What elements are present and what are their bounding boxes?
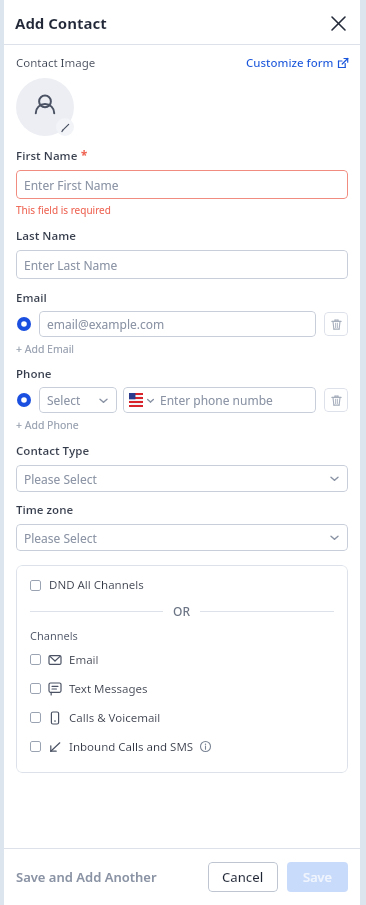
staticText: Add Contact — [15, 13, 107, 33]
staticText: DND All Channels — [49, 577, 144, 593]
button[interactable]: Toggle — [30, 683, 41, 694]
button[interactable]: Select primary — [16, 316, 32, 332]
button[interactable]: Toggle — [30, 654, 41, 665]
staticText: Save — [303, 868, 332, 886]
button[interactable]: Toggle — [30, 580, 41, 591]
staticText: Text Messages — [69, 681, 148, 697]
staticText: Time zone — [16, 502, 74, 518]
staticText: Enter phone numbe — [160, 392, 273, 408]
staticText: Please Select — [24, 471, 97, 487]
staticText: Email — [69, 652, 99, 668]
staticText: Calls & Voicemail — [69, 710, 161, 726]
button[interactable]: Save and Add Another — [16, 868, 157, 886]
button[interactable]: Close — [322, 7, 354, 39]
button[interactable]: Toggle — [30, 577, 334, 593]
button[interactable]: email@example.com — [39, 311, 316, 337]
staticText: Select — [47, 392, 81, 408]
button[interactable]: Toggle — [30, 674, 334, 703]
staticText: This field is required — [16, 203, 111, 217]
button[interactable]: Please Select — [16, 465, 348, 492]
staticText: + Add Phone — [16, 418, 79, 432]
button[interactable]: Delete — [324, 388, 348, 412]
button[interactable]: Toggle — [30, 703, 334, 732]
button[interactable]: Toggle — [30, 732, 334, 761]
staticText: Inbound Calls and SMS — [69, 739, 194, 755]
button[interactable]: Enter Last Name — [16, 250, 348, 279]
button[interactable]: Toggle — [30, 645, 334, 674]
staticText: First Name — [16, 148, 78, 164]
staticText: Save and Add Another — [16, 868, 157, 886]
staticText: Last Name — [16, 228, 76, 244]
staticText: Please Select — [24, 530, 97, 546]
button[interactable]: Toggle — [30, 712, 41, 723]
staticText: Phone — [16, 366, 52, 382]
staticText: Cancel — [222, 868, 264, 886]
button[interactable]: Delete — [324, 312, 348, 336]
staticText: + Add Email — [16, 342, 75, 356]
button[interactable]: Enter First Name — [16, 170, 348, 199]
staticText: Enter Last Name — [24, 257, 118, 273]
button[interactable]: Contact image — [16, 78, 74, 136]
staticText: Contact Image — [16, 55, 96, 71]
staticText: email@example.com — [47, 316, 165, 332]
staticText: Customize form — [246, 55, 334, 71]
button[interactable]: + Add Email — [16, 342, 75, 356]
staticText: Contact Type — [16, 443, 90, 459]
staticText: OR — [173, 603, 190, 619]
button[interactable]: + Add Phone — [16, 418, 79, 432]
staticText: Channels — [30, 628, 78, 643]
staticText: Email — [16, 290, 47, 306]
button[interactable]: Toggle — [30, 741, 41, 752]
button[interactable]: Customize form — [246, 55, 348, 71]
button[interactable]: Select — [39, 387, 117, 413]
button[interactable]: Enter phone numbe — [123, 387, 316, 413]
button[interactable]: Select primary — [16, 392, 32, 408]
button[interactable]: Please Select — [16, 524, 348, 551]
button[interactable]: Edit image — [56, 118, 74, 136]
staticText: Enter First Name — [24, 177, 119, 193]
button[interactable]: Save — [287, 862, 348, 892]
staticText: * — [81, 148, 88, 164]
button[interactable]: Cancel — [208, 862, 278, 892]
